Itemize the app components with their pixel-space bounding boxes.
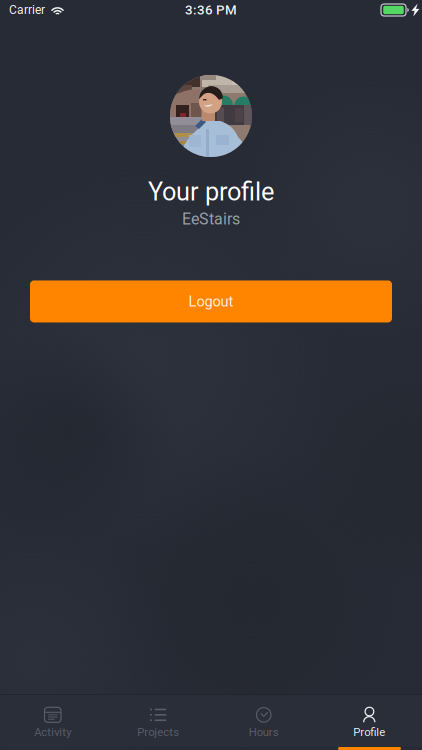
button[interactable]: Hours	[211, 693, 316, 749]
staticText: 3:36 PM	[185, 2, 237, 18]
staticText: Profile	[353, 726, 385, 739]
staticText: Logout	[188, 293, 233, 310]
button[interactable]: Profile	[316, 693, 422, 749]
staticText: Hours	[249, 726, 279, 739]
button[interactable]: Logout	[30, 280, 392, 322]
staticText: Activity	[34, 726, 71, 739]
button[interactable]: Projects	[105, 693, 211, 749]
staticText: Carrier	[9, 3, 45, 17]
staticText: Projects	[137, 726, 179, 739]
staticText: EeStairs	[182, 210, 240, 228]
staticText: Your profile	[148, 177, 274, 207]
button[interactable]: Activity	[0, 693, 105, 749]
